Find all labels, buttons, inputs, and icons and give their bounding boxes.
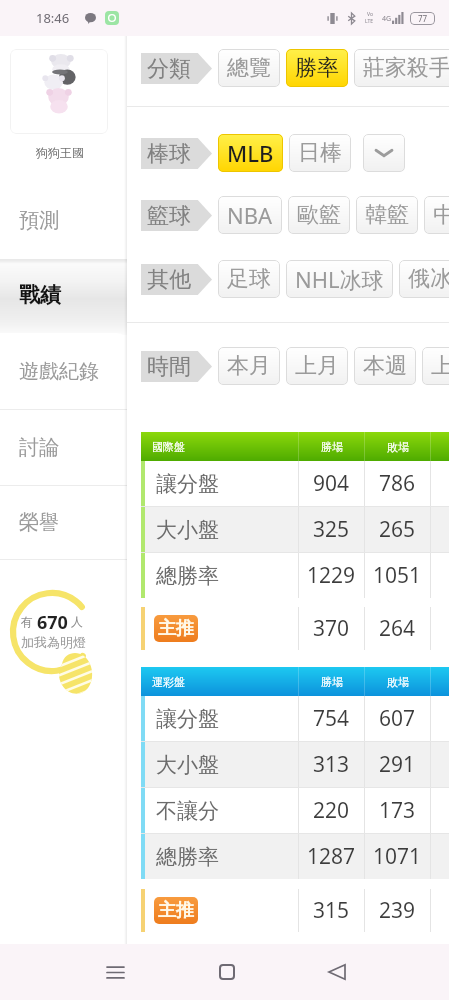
staticText: 大小盤	[156, 517, 298, 543]
button[interactable]: Profile photo	[10, 49, 108, 134]
staticText: 有	[21, 614, 33, 629]
staticText: 籃球	[147, 202, 191, 230]
button[interactable]: 棒球	[141, 138, 212, 169]
button[interactable]: 總勝率	[141, 834, 449, 879]
staticText: 77	[418, 13, 428, 24]
button[interactable]: 讓分盤	[141, 696, 449, 741]
staticText: 主推	[158, 899, 194, 922]
staticText: 325	[313, 515, 350, 544]
staticText: 韓籃	[365, 201, 409, 229]
staticText: 敗場	[387, 675, 409, 689]
button[interactable]: Expand more leagues	[363, 134, 405, 172]
staticText: 討論	[19, 435, 59, 460]
staticText: 國際盤	[152, 440, 298, 454]
staticText: 榮譽	[19, 510, 59, 535]
staticText: 607	[379, 704, 416, 733]
staticText: 勝場	[321, 675, 343, 689]
staticText: 315	[313, 896, 350, 925]
button[interactable]: 足球	[218, 260, 280, 298]
button[interactable]: 籃球	[141, 200, 212, 231]
staticText: 中	[433, 201, 449, 229]
staticText: MLB	[227, 138, 274, 168]
staticText: 上月	[295, 352, 339, 380]
button[interactable]: Recent apps	[92, 944, 138, 1000]
staticText: 運彩盤	[152, 675, 298, 689]
staticText: 265	[379, 515, 416, 544]
button[interactable]: 大小盤	[141, 742, 449, 787]
button[interactable]: 本週	[354, 347, 416, 385]
staticText: 莊家殺手	[363, 54, 449, 82]
staticText: 173	[379, 796, 416, 825]
button[interactable]: MLB	[218, 134, 283, 172]
staticText: 歐籃	[297, 201, 341, 229]
staticText: 戰績	[19, 282, 61, 308]
staticText: 勝場	[321, 440, 343, 454]
staticText: 不讓分	[156, 798, 298, 824]
staticText: 預測	[19, 208, 59, 233]
staticText: 主推	[158, 617, 194, 640]
button[interactable]: 歐籃	[288, 196, 350, 234]
staticText: 其他	[147, 266, 191, 294]
staticText: 人	[71, 614, 83, 629]
staticText: 遊戲紀錄	[19, 359, 99, 384]
button[interactable]: NHL冰球	[286, 260, 393, 298]
staticText: 313	[313, 750, 350, 779]
staticText: 時間	[147, 353, 191, 381]
button[interactable]: 預測	[0, 191, 127, 249]
staticText: 讓分盤	[156, 706, 298, 732]
staticText: 總覽	[227, 54, 271, 82]
staticText: 本月	[227, 352, 271, 380]
staticText: 敗場	[387, 440, 409, 454]
button[interactable]: Home	[204, 944, 250, 1000]
button[interactable]: 莊家殺手	[354, 49, 449, 87]
staticText: 上	[431, 352, 449, 380]
staticText: 日棒	[298, 139, 342, 167]
staticText: 讓分盤	[156, 471, 298, 497]
staticText: 754	[313, 704, 350, 733]
button[interactable]: 其他	[141, 264, 212, 295]
staticText: 總勝率	[156, 563, 298, 589]
staticText: 棒球	[147, 140, 191, 168]
button[interactable]: 戰績	[0, 260, 127, 335]
button[interactable]: 讓分盤	[141, 461, 449, 506]
staticText: 291	[379, 750, 416, 779]
button[interactable]: 韓籃	[356, 196, 418, 234]
button[interactable]: 榮譽	[0, 491, 127, 553]
button[interactable]: 主推	[141, 607, 449, 650]
button[interactable]: 俄冰	[399, 260, 449, 298]
staticText: 786	[379, 469, 416, 498]
button[interactable]: 大小盤	[141, 507, 449, 552]
button[interactable]: Back	[314, 944, 360, 1000]
button[interactable]: 日棒	[289, 134, 351, 172]
staticText: 4G	[382, 14, 392, 24]
staticText: 俄冰	[408, 265, 449, 293]
staticText: LTE	[365, 18, 374, 25]
button[interactable]: 遊戲紀錄	[0, 340, 127, 402]
staticText: 勝率	[295, 54, 339, 82]
staticText: 670	[37, 610, 68, 632]
button[interactable]: 分類	[141, 53, 212, 84]
button[interactable]: 不讓分	[141, 788, 449, 833]
staticText: 1071	[373, 842, 422, 871]
staticText: 239	[379, 896, 416, 925]
staticText: 370	[313, 614, 350, 643]
staticText: 904	[313, 469, 350, 498]
staticText: 加我為明燈	[21, 634, 86, 650]
staticText: 本週	[363, 352, 407, 380]
staticText: 總勝率	[156, 844, 298, 870]
staticText: NBA	[227, 200, 273, 230]
button[interactable]: 時間	[141, 351, 212, 382]
button[interactable]: NBA	[218, 196, 282, 234]
button[interactable]: 主推	[141, 889, 449, 932]
button[interactable]: 勝率	[286, 49, 348, 87]
button[interactable]: 討論	[0, 416, 127, 478]
staticText: NHL冰球	[295, 264, 384, 294]
staticText: 220	[313, 796, 350, 825]
button[interactable]: 總覽	[218, 49, 280, 87]
button[interactable]: 上	[422, 347, 449, 385]
button[interactable]: 總勝率	[141, 553, 449, 598]
button[interactable]: 上月	[286, 347, 348, 385]
staticText: 1051	[373, 561, 422, 590]
button[interactable]: 中	[424, 196, 449, 234]
button[interactable]: 本月	[218, 347, 280, 385]
